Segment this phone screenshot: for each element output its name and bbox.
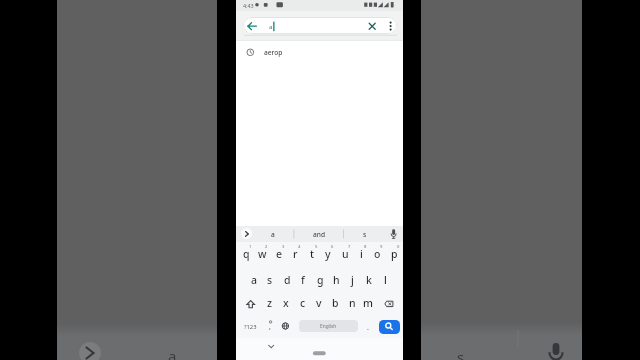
- staticText: x: [283, 296, 289, 310]
- staticText: u: [342, 247, 349, 261]
- button[interactable]: [238, 44, 400, 60]
- button[interactable]: d: [279, 269, 295, 291]
- staticText: w: [258, 247, 267, 261]
- button[interactable]: u: [337, 243, 353, 265]
- button[interactable]: t: [304, 243, 320, 265]
- staticText: s: [457, 347, 465, 360]
- staticText: s: [363, 230, 367, 239]
- button[interactable]: b: [327, 292, 343, 314]
- button[interactable]: [379, 320, 400, 334]
- button[interactable]: w: [254, 243, 270, 265]
- button[interactable]: [256, 227, 292, 241]
- staticText: f: [301, 273, 305, 287]
- button[interactable]: English: [299, 320, 358, 332]
- staticText: b: [332, 296, 339, 310]
- staticText: q: [243, 247, 250, 261]
- button[interactable]: c: [295, 292, 311, 314]
- button[interactable]: f: [295, 269, 311, 291]
- staticText: 4:43: [243, 2, 254, 9]
- button[interactable]: [384, 18, 397, 32]
- button[interactable]: h: [328, 269, 344, 291]
- button[interactable]: [264, 344, 278, 352]
- button[interactable]: l: [377, 269, 393, 291]
- button[interactable]: j: [344, 269, 360, 291]
- button[interactable]: m: [360, 292, 376, 314]
- staticText: t: [310, 247, 315, 261]
- button[interactable]: k: [361, 269, 377, 291]
- staticText: 3: [282, 244, 285, 250]
- button[interactable]: e: [271, 243, 287, 265]
- button[interactable]: [245, 18, 259, 32]
- staticText: 6: [331, 244, 334, 250]
- staticText: o: [374, 247, 381, 261]
- button[interactable]: [387, 227, 400, 241]
- button[interactable]: [278, 316, 293, 336]
- staticText: l: [384, 273, 387, 287]
- staticText: p: [391, 247, 398, 261]
- staticText: s: [267, 273, 273, 287]
- staticText: English: [320, 323, 337, 330]
- staticText: n: [349, 296, 356, 310]
- button[interactable]: n: [344, 292, 360, 314]
- staticText: 1: [249, 244, 252, 250]
- staticText: j: [351, 273, 354, 287]
- button[interactable]: ,: [262, 316, 278, 338]
- staticText: 5: [315, 244, 318, 250]
- button[interactable]: y: [320, 243, 336, 265]
- staticText: i: [360, 247, 363, 261]
- staticText: r: [293, 247, 298, 261]
- staticText: y: [325, 247, 331, 261]
- button[interactable]: p: [386, 243, 402, 265]
- staticText: 7: [348, 244, 351, 250]
- button[interactable]: [242, 294, 259, 314]
- staticText: z: [267, 296, 273, 310]
- staticText: 9: [380, 244, 383, 250]
- button[interactable]: v: [311, 292, 327, 314]
- staticText: and: [313, 230, 325, 239]
- staticText: ,: [269, 322, 271, 332]
- button[interactable]: [297, 227, 341, 241]
- staticText: 4: [298, 244, 301, 250]
- staticText: d: [284, 273, 291, 287]
- staticText: .: [367, 323, 369, 333]
- staticText: m: [363, 296, 373, 310]
- staticText: a: [271, 230, 275, 239]
- staticText: e: [276, 247, 283, 261]
- button[interactable]: [310, 349, 328, 357]
- staticText: aerop: [264, 48, 283, 57]
- staticText: a: [251, 273, 258, 287]
- staticText: 2: [265, 244, 268, 250]
- staticText: v: [316, 296, 322, 310]
- button[interactable]: [243, 17, 397, 34]
- staticText: 0: [397, 244, 400, 250]
- button[interactable]: [381, 294, 398, 314]
- staticText: k: [366, 273, 372, 287]
- button[interactable]: q: [238, 243, 254, 265]
- staticText: a: [168, 346, 177, 360]
- button[interactable]: g: [312, 269, 328, 291]
- button[interactable]: s: [262, 269, 278, 291]
- staticText: g: [317, 273, 324, 287]
- staticText: 8: [364, 244, 367, 250]
- button[interactable]: i: [353, 243, 369, 265]
- button[interactable]: .: [360, 317, 376, 339]
- button[interactable]: [241, 316, 259, 336]
- staticText: h: [333, 273, 340, 287]
- button[interactable]: x: [278, 292, 294, 314]
- button[interactable]: [241, 228, 252, 239]
- button[interactable]: a: [246, 269, 262, 291]
- button[interactable]: [365, 18, 379, 32]
- button[interactable]: o: [369, 243, 385, 265]
- button[interactable]: [347, 227, 387, 241]
- button[interactable]: z: [262, 292, 278, 314]
- staticText: c: [300, 296, 306, 310]
- button[interactable]: r: [287, 243, 303, 265]
- staticText: a: [269, 23, 273, 31]
- staticText: ?123: [244, 323, 257, 331]
